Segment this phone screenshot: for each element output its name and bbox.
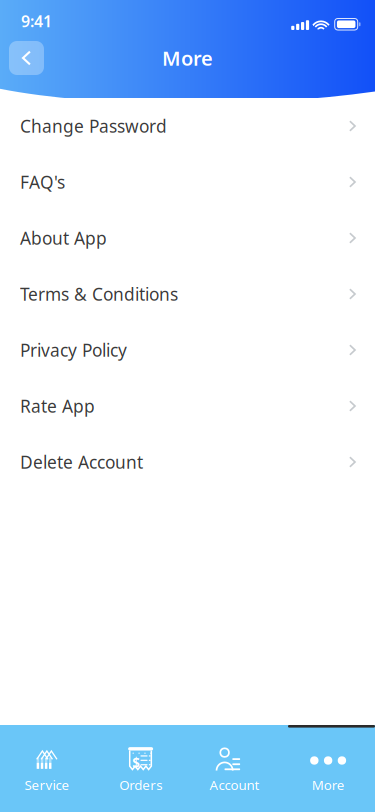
staticText: Service [24,776,69,794]
button[interactable]: About App [0,210,375,266]
button[interactable]: Privacy Policy [0,322,375,378]
staticText: Account [209,776,259,794]
staticText: Terms & Conditions [20,282,178,305]
button[interactable]: Terms & Conditions [0,266,375,322]
button[interactable]: $ [94,725,188,812]
staticText: Change Password [20,114,167,137]
button[interactable]: Account [187,725,281,812]
staticText: 9:41 [21,10,52,32]
button[interactable]: Back [9,41,44,75]
button[interactable]: Rate App [0,378,375,434]
staticText: Rate App [20,394,95,417]
staticText: More [312,776,345,794]
button[interactable]: FAQ's [0,154,375,210]
button[interactable]: Change Password [0,98,375,154]
staticText: Delete Account [20,450,143,473]
staticText: Privacy Policy [20,338,127,361]
staticText: Orders [119,776,162,794]
staticText: About App [20,226,107,249]
button[interactable]: More [281,725,375,812]
staticText: FAQ's [20,170,65,193]
staticText: $ [132,754,140,771]
button[interactable]: Service [0,725,94,812]
staticText: More [162,45,213,71]
button[interactable]: Delete Account [0,434,375,490]
